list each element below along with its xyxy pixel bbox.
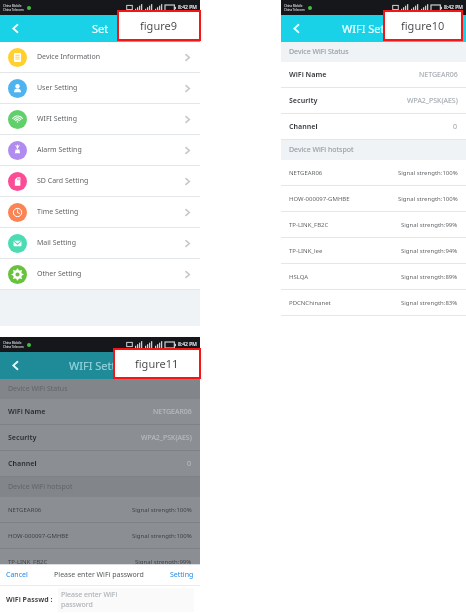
button[interactable]: Setting bbox=[170, 570, 194, 580]
staticText: TP-LINK_lee bbox=[8, 584, 135, 592]
staticText: Signal strength:83% bbox=[401, 299, 458, 307]
staticText: 8:42 PM bbox=[178, 341, 197, 348]
staticText: Signal strength:100% bbox=[398, 195, 458, 203]
staticText: WIFI Setting bbox=[69, 358, 132, 373]
staticText: Cancel bbox=[6, 570, 28, 580]
staticText: Set bbox=[92, 21, 109, 36]
staticText: Signal strength:99% bbox=[401, 221, 458, 229]
staticText: Signal strength:100% bbox=[132, 532, 192, 540]
staticText: HOW-000097-GMHBE bbox=[8, 532, 132, 540]
button[interactable]: PDCNChinanet bbox=[281, 290, 466, 315]
staticText: WPA2_PSK(AES) bbox=[141, 433, 192, 443]
button[interactable]: NETGEAR06 bbox=[0, 497, 200, 522]
button[interactable]: TP-LINK_lee bbox=[0, 575, 200, 600]
staticText: HSLQA bbox=[8, 604, 135, 612]
staticText: WiFi Passwd : bbox=[6, 595, 53, 605]
staticText: WIFI Setting bbox=[342, 21, 405, 36]
staticText: WiFi Name bbox=[8, 407, 153, 417]
staticText: TP-LINK_FB2C bbox=[8, 558, 135, 566]
button[interactable]: WiFi Name bbox=[0, 399, 200, 424]
button[interactable]: Channel bbox=[281, 114, 466, 139]
button[interactable]: Alarm Setting bbox=[0, 135, 200, 165]
staticText: Please enter WiFi password bbox=[61, 590, 118, 610]
staticText: PDCNChinanet bbox=[289, 299, 401, 307]
staticText: 0 bbox=[187, 459, 192, 469]
button[interactable]: HOW-000097-GMHBE bbox=[0, 523, 200, 548]
staticText: Signal strength:100% bbox=[132, 506, 192, 514]
staticText: NETGEAR06 bbox=[8, 506, 132, 514]
staticText: 8:42 PM bbox=[178, 4, 197, 11]
button[interactable]: HSLQA bbox=[281, 264, 466, 289]
staticText: Channel bbox=[8, 459, 187, 469]
button[interactable]: TP-LINK_lee bbox=[281, 238, 466, 263]
button[interactable]: Cancel bbox=[6, 570, 28, 580]
staticText: TP-LINK_lee bbox=[289, 247, 401, 255]
button[interactable]: TP-LINK_FB2C bbox=[0, 549, 200, 574]
button[interactable]: Back bbox=[281, 15, 311, 42]
button[interactable]: Please enter WiFi password bbox=[58, 588, 194, 612]
staticText: Device WiFi hotspot bbox=[8, 482, 73, 492]
staticText: NETGEAR06 bbox=[289, 169, 398, 177]
staticText: NETGEAR06 bbox=[153, 407, 192, 417]
button[interactable]: Channel bbox=[0, 451, 200, 476]
staticText: Alarm Setting bbox=[37, 145, 183, 155]
staticText: TP-LINK_FB2C bbox=[289, 221, 401, 229]
button[interactable]: TP-LINK_FB2C bbox=[281, 212, 466, 237]
staticText: figure9 bbox=[140, 18, 178, 33]
button[interactable]: Other Setting bbox=[0, 259, 200, 289]
button[interactable]: Time Setting bbox=[0, 197, 200, 227]
staticText: Device WiFi Status bbox=[8, 384, 68, 394]
staticText: NETGEAR06 bbox=[419, 70, 458, 80]
staticText: HOW-000097-GMHBE bbox=[289, 195, 398, 203]
staticText: User Setting bbox=[37, 83, 183, 93]
staticText: Mail Setting bbox=[37, 238, 183, 248]
staticText: China Mobile bbox=[3, 341, 22, 345]
button[interactable]: NETGEAR06 bbox=[281, 160, 466, 185]
staticText: Device Information bbox=[37, 52, 183, 62]
staticText: WiFi Name bbox=[289, 70, 419, 80]
staticText: Time Setting bbox=[37, 207, 183, 217]
button[interactable]: User Setting bbox=[0, 73, 200, 103]
staticText: figure10 bbox=[401, 18, 445, 33]
staticText: Setting bbox=[170, 570, 194, 580]
staticText: 0 bbox=[453, 122, 458, 132]
staticText: Signal strength:94% bbox=[401, 247, 458, 255]
staticText: 8:42 PM bbox=[444, 4, 463, 11]
button[interactable]: Back bbox=[0, 352, 30, 379]
staticText: China Telecom bbox=[3, 8, 24, 12]
button[interactable]: HSLQA bbox=[0, 601, 200, 614]
staticText: China Mobile bbox=[3, 4, 22, 8]
button[interactable]: Device Information bbox=[0, 42, 200, 72]
button[interactable]: Security bbox=[281, 88, 466, 113]
staticText: HSLQA bbox=[289, 273, 401, 281]
button[interactable]: HOW-000097-GMHBE bbox=[281, 186, 466, 211]
staticText: Please enter WiFi password bbox=[33, 570, 165, 580]
staticText: China Telecom bbox=[284, 8, 305, 12]
button[interactable]: Mail Setting bbox=[0, 228, 200, 258]
button[interactable]: Security bbox=[0, 425, 200, 450]
staticText: Channel bbox=[289, 122, 453, 132]
button[interactable]: SD Card Setting bbox=[0, 166, 200, 196]
staticText: WPA2_PSK(AES) bbox=[407, 96, 458, 106]
staticText: Signal strength:89% bbox=[401, 273, 458, 281]
staticText: WIFI Setting bbox=[37, 114, 183, 124]
staticText: China Mobile bbox=[284, 4, 303, 8]
button[interactable]: WiFi Name bbox=[281, 62, 466, 87]
staticText: Security bbox=[8, 433, 141, 443]
staticText: Device WiFi Status bbox=[289, 47, 349, 57]
staticText: Other Setting bbox=[37, 269, 183, 279]
staticText: Signal strength:94% bbox=[135, 584, 192, 592]
button[interactable]: WIFI Setting bbox=[0, 104, 200, 134]
staticText: Signal strength:99% bbox=[135, 558, 192, 566]
staticText: Signal strength:100% bbox=[398, 169, 458, 177]
staticText: Device WiFi hotspot bbox=[289, 145, 354, 155]
button[interactable]: Back bbox=[0, 15, 30, 42]
staticText: SD Card Setting bbox=[37, 176, 183, 186]
staticText: figure11 bbox=[135, 356, 179, 371]
staticText: Security bbox=[289, 96, 407, 106]
staticText: China Telecom bbox=[3, 345, 24, 349]
